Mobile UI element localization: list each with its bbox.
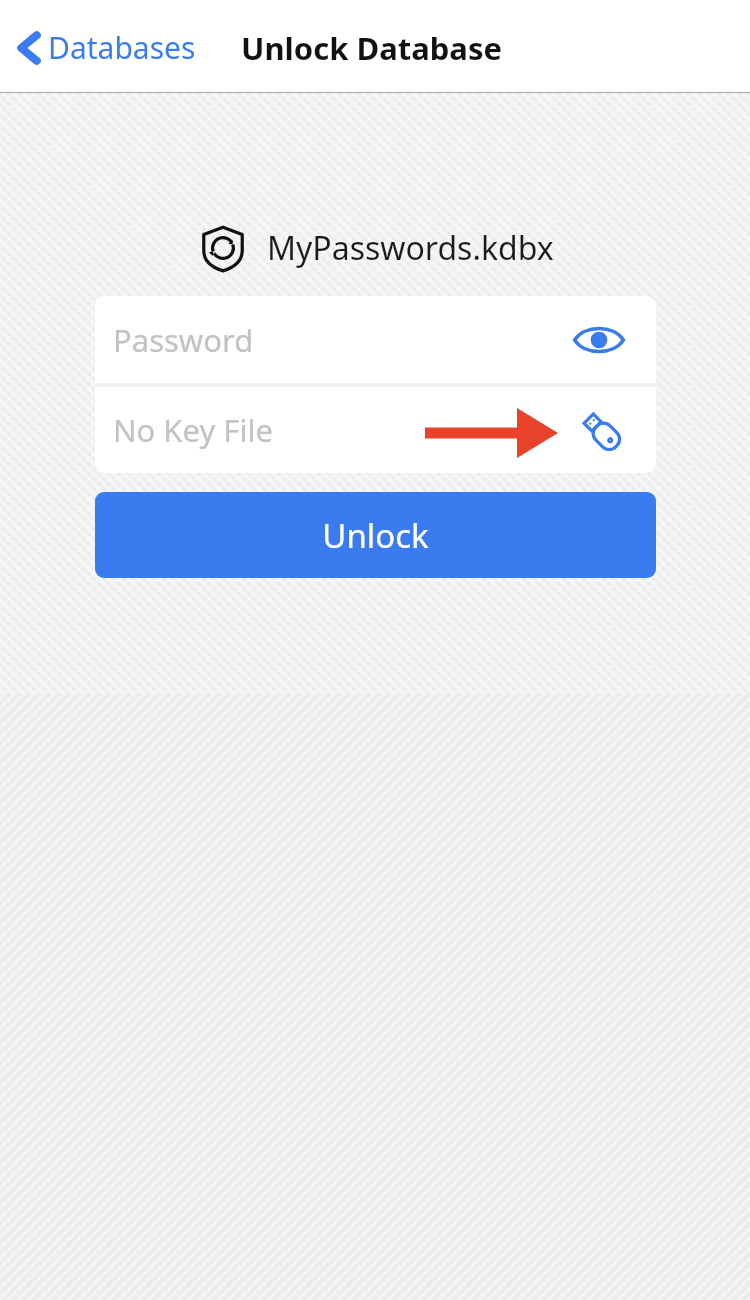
button[interactable]: Unlock [95,492,656,578]
button[interactable]: Select key file [572,402,628,458]
staticText: Unlock [322,513,429,558]
staticText: MyPasswords.kdbx [267,226,554,270]
staticText: Password [113,319,254,361]
button[interactable]: No Key File [95,387,656,473]
button[interactable]: Databases [0,19,208,76]
button[interactable]: Show password [572,318,626,362]
staticText: Unlock Database [241,27,502,69]
staticText: Databases [48,27,196,68]
staticText: No Key File [113,409,273,451]
button[interactable]: Password [95,296,656,383]
